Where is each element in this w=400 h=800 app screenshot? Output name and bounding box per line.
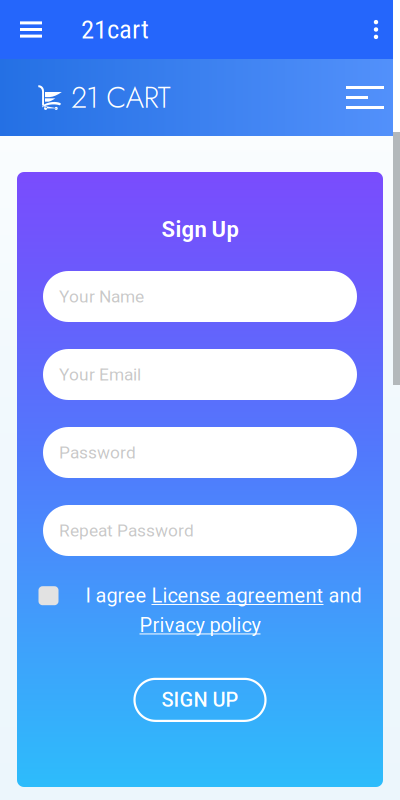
staticText: and [323, 584, 361, 607]
staticText: Your Email [59, 364, 141, 385]
button[interactable]: Privacy policy [139, 613, 260, 637]
staticText: Repeat Password [59, 520, 194, 541]
button[interactable]: More options [352, 0, 400, 59]
button[interactable]: Password [43, 427, 357, 478]
staticText: SIGN UP [161, 688, 238, 712]
button[interactable]: Navigation menu [330, 59, 400, 136]
button[interactable]: Your Name [43, 271, 357, 322]
button[interactable]: License agreement [151, 584, 323, 607]
button[interactable]: 21 CART home [0, 59, 171, 136]
button[interactable]: SIGN UP [134, 679, 265, 721]
staticText: 21 CART [71, 76, 171, 119]
button[interactable]: Your Email [43, 349, 357, 400]
staticText: Sign Up [161, 217, 238, 242]
staticText: Privacy policy [139, 613, 260, 637]
button[interactable]: Menu [0, 0, 62, 59]
staticText: License agreement [151, 584, 323, 607]
staticText: Your Name [59, 286, 144, 307]
staticText: 21cart [81, 14, 149, 45]
button[interactable]: Repeat Password [43, 505, 357, 556]
button[interactable]: I agree to the license agreement [38, 586, 58, 605]
staticText: I agree [85, 584, 151, 607]
staticText: Password [59, 442, 136, 463]
